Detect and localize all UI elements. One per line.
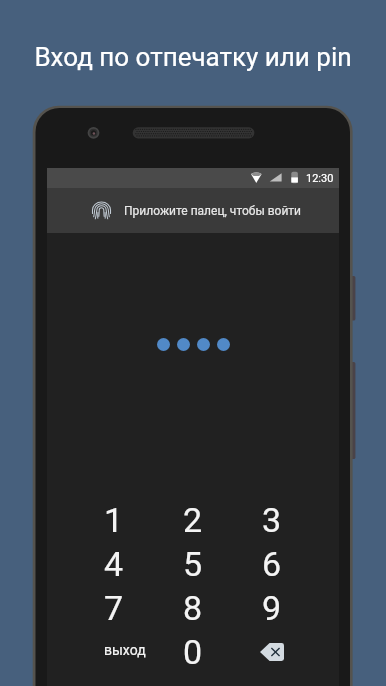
button[interactable]: Fingerprint: [47, 188, 339, 233]
button[interactable]: 0: [153, 630, 232, 674]
staticText: 2: [183, 500, 203, 540]
staticText: выход: [104, 642, 146, 658]
button[interactable]: 2: [153, 498, 232, 542]
staticText: 0: [183, 632, 203, 672]
button[interactable]: 9: [232, 586, 311, 630]
staticText: 6: [262, 544, 282, 584]
staticText: Приложите палец, чтобы войти: [124, 204, 302, 218]
staticText: 5: [183, 544, 203, 584]
button[interactable]: 3: [232, 498, 311, 542]
button[interactable]: Backspace: [232, 630, 311, 674]
staticText: 8: [183, 588, 203, 628]
staticText: 9: [262, 588, 282, 628]
button[interactable]: 7: [75, 586, 153, 630]
staticText: 7: [104, 588, 124, 628]
button[interactable]: 4: [75, 542, 153, 586]
button[interactable]: 8: [153, 586, 232, 630]
button[interactable]: 5: [153, 542, 232, 586]
button[interactable]: 1: [75, 498, 153, 542]
staticText: 1: [104, 500, 124, 540]
staticText: Вход по отпечатку или pin: [34, 42, 352, 72]
staticText: 12:30: [306, 172, 334, 185]
staticText: 4: [104, 544, 124, 584]
button[interactable]: 6: [232, 542, 311, 586]
button[interactable]: выход: [75, 630, 153, 674]
staticText: 3: [262, 500, 282, 540]
other: Fingerprint: [92, 201, 111, 221]
